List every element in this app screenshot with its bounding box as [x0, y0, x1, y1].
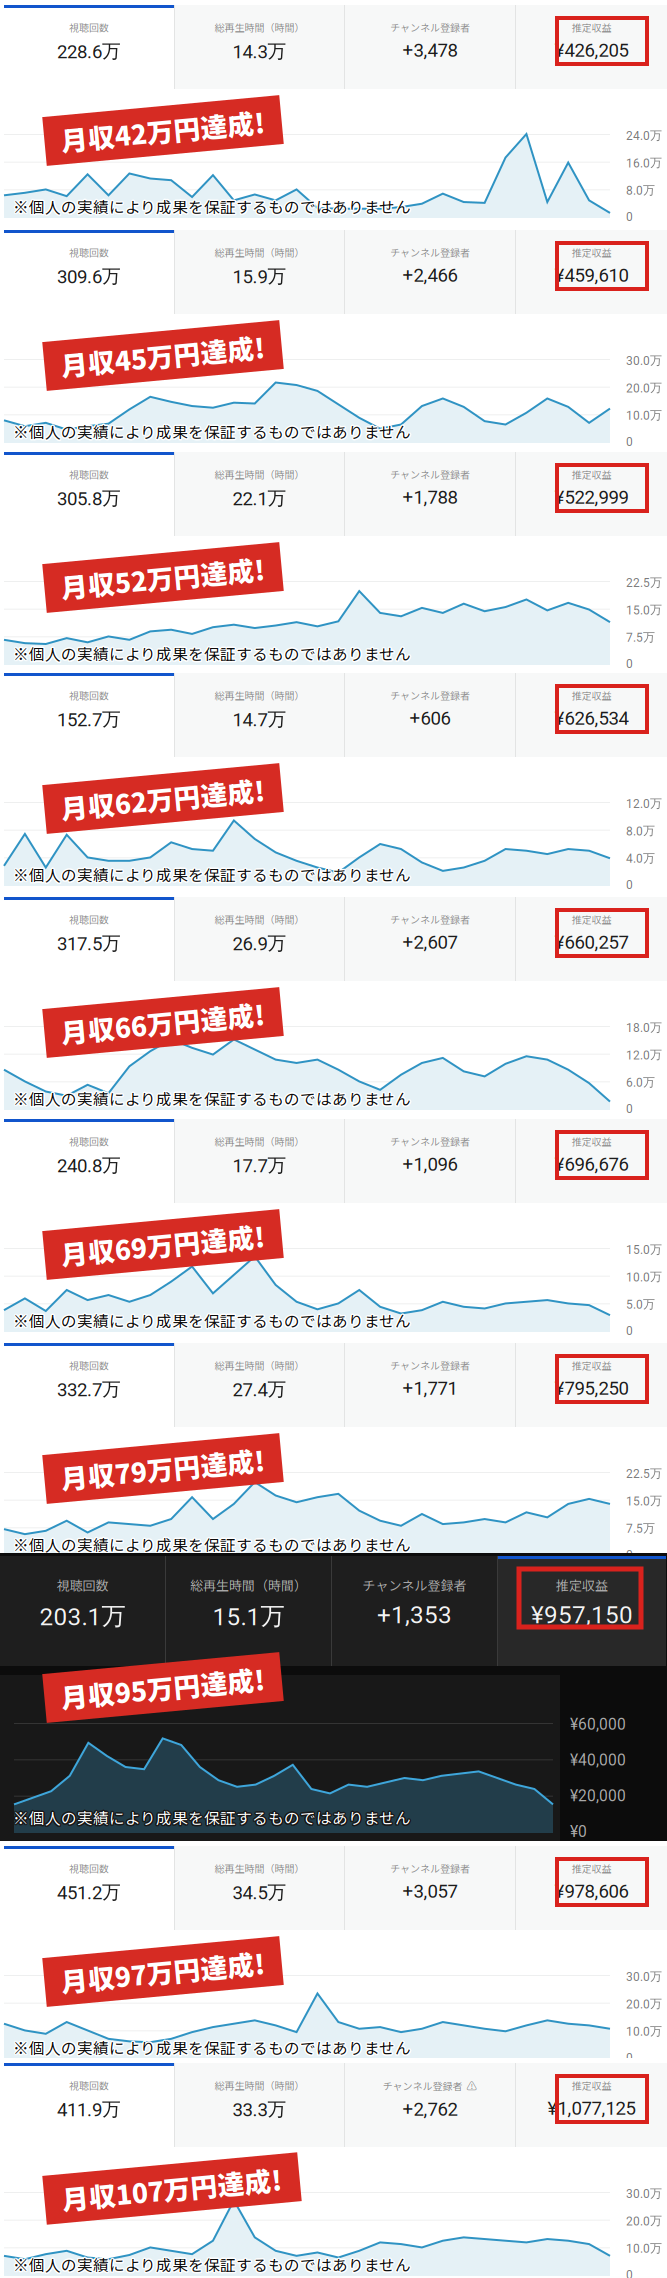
- staticText: ※個人の実績により成果を保証するものではありません: [14, 1309, 412, 1332]
- staticText: チャンネル登録者: [390, 912, 470, 926]
- button[interactable]: 総再生時間（時間）: [175, 5, 344, 89]
- staticText: ※個人の実績により成果を保証するものではありません: [14, 2252, 412, 2274]
- staticText: ※個人の実績により成果を保証するものではありません: [14, 196, 412, 219]
- staticText: 推定収益: [571, 20, 611, 34]
- button[interactable]: 推定収益: [516, 897, 667, 981]
- button[interactable]: 視聴回数: [4, 230, 174, 314]
- staticText: 視聴回数: [69, 2078, 109, 2092]
- staticText: 20.0万: [626, 1996, 662, 2011]
- button[interactable]: チャンネル登録者: [345, 897, 515, 981]
- staticText: 22.1万: [232, 486, 286, 510]
- staticText: ※個人の実績により成果を保証するものではありません: [14, 1806, 412, 1829]
- staticText: 推定収益: [571, 245, 611, 259]
- staticText: 月収95万円達成!: [60, 1668, 265, 1707]
- staticText: ※個人の実績により成果を保証するものではありません: [14, 1087, 412, 1110]
- staticText: 推定収益: [571, 688, 611, 702]
- staticText: 推定収益: [571, 467, 611, 481]
- button[interactable]: 総再生時間（時間）: [166, 1556, 331, 1666]
- button[interactable]: チャンネル登録者: [345, 673, 515, 757]
- staticText: 12.0万: [626, 1047, 662, 1062]
- staticText: 33.3万: [232, 2097, 286, 2121]
- staticText: 推定収益: [556, 1575, 608, 1594]
- staticText: +2,762: [402, 2098, 457, 2120]
- staticText: +1,353: [377, 1601, 452, 1629]
- button[interactable]: 推定収益: [516, 230, 667, 314]
- staticText: 0: [626, 2268, 633, 2278]
- button[interactable]: 視聴回数: [4, 2063, 174, 2147]
- staticText: 240.8万: [57, 1153, 121, 1177]
- staticText: +2,607: [402, 931, 457, 953]
- staticText: ※個人の実績により成果を保証するものではありません: [13, 195, 411, 218]
- button[interactable]: 視聴回数: [4, 673, 174, 757]
- staticText: ※個人の実績により成果を保証するものではありません: [12, 1308, 410, 1330]
- staticText: ※個人の実績により成果を保証するものではありません: [12, 1807, 410, 1830]
- button[interactable]: 推定収益: [516, 5, 667, 89]
- button[interactable]: チャンネル登録者: [345, 5, 515, 89]
- button[interactable]: チャンネル登録者: [345, 2063, 515, 2147]
- staticText: 14.7万: [232, 707, 286, 731]
- staticText: 15.0万: [626, 602, 662, 617]
- staticText: 総再生時間（時間）: [214, 20, 304, 34]
- staticText: 総再生時間（時間）: [214, 245, 304, 259]
- staticText: ※個人の実績により成果を保証するものではありません: [14, 2036, 412, 2059]
- staticText: ※個人の実績により成果を保証するものではありません: [13, 1534, 411, 1557]
- staticText: ※個人の実績により成果を保証するものではありません: [14, 1086, 412, 1108]
- button[interactable]: 推定収益: [516, 1119, 667, 1203]
- staticText: 10.0万: [626, 408, 662, 423]
- button[interactable]: 視聴回数: [4, 897, 174, 981]
- staticText: 30.0万: [626, 1969, 662, 1984]
- staticText: ※個人の実績により成果を保証するものではありません: [13, 863, 411, 886]
- staticText: ※個人の実績により成果を保証するものではありません: [13, 418, 411, 441]
- button[interactable]: チャンネル登録者: [345, 1846, 515, 1930]
- staticText: 推定収益: [571, 1134, 611, 1148]
- button[interactable]: 推定収益: [498, 1556, 666, 1666]
- staticText: ※個人の実績により成果を保証するものではありません: [13, 1307, 411, 1330]
- staticText: 推定収益: [571, 1861, 611, 1875]
- button[interactable]: 推定収益: [516, 452, 667, 536]
- button[interactable]: 総再生時間（時間）: [175, 673, 344, 757]
- button[interactable]: 総再生時間（時間）: [175, 1846, 344, 1930]
- button[interactable]: 推定収益: [516, 673, 667, 757]
- staticText: 0: [626, 1548, 633, 1562]
- button[interactable]: 総再生時間（時間）: [175, 452, 344, 536]
- button[interactable]: 総再生時間（時間）: [175, 2063, 344, 2147]
- staticText: 8.0万: [626, 823, 655, 838]
- button[interactable]: 総再生時間（時間）: [175, 1119, 344, 1203]
- button[interactable]: チャンネル登録者: [345, 1343, 515, 1427]
- button[interactable]: 視聴回数: [4, 1343, 174, 1427]
- staticText: ※個人の実績により成果を保証するものではありません: [14, 863, 412, 886]
- staticText: チャンネル登録者: [390, 245, 470, 259]
- staticText: チャンネル登録者: [390, 1861, 470, 1875]
- button[interactable]: 視聴回数: [4, 5, 174, 89]
- button[interactable]: 推定収益: [516, 2063, 667, 2147]
- staticText: 451.2万: [57, 1880, 121, 1904]
- staticText: ※個人の実績により成果を保証するものではありません: [14, 1533, 412, 1556]
- staticText: 総再生時間（時間）: [214, 2078, 304, 2092]
- button[interactable]: チャンネル登録者: [332, 1556, 497, 1666]
- button[interactable]: 総再生時間（時間）: [175, 1343, 344, 1427]
- staticText: チャンネル登録者: [390, 467, 470, 481]
- button[interactable]: 視聴回数: [4, 452, 174, 536]
- staticText: 15.9万: [232, 264, 286, 288]
- staticText: 視聴回数: [69, 245, 109, 259]
- staticText: 月収107万円達成!: [61, 2169, 282, 2208]
- staticText: ※個人の実績により成果を保証するものではありません: [12, 1088, 410, 1111]
- staticText: 16.0万: [626, 155, 662, 170]
- staticText: +1,096: [402, 1153, 457, 1175]
- button[interactable]: 推定収益: [516, 1846, 667, 1930]
- button[interactable]: 総再生時間（時間）: [175, 230, 344, 314]
- staticText: ※個人の実績により成果を保証するものではありません: [11, 642, 409, 665]
- staticText: ¥1,077,125: [547, 2097, 635, 2119]
- button[interactable]: チャンネル登録者: [345, 1119, 515, 1203]
- staticText: 月収97万円達成!: [60, 1952, 265, 1991]
- button[interactable]: 推定収益: [516, 1343, 667, 1427]
- button[interactable]: チャンネル登録者: [345, 230, 515, 314]
- button[interactable]: 視聴回数: [0, 1556, 165, 1666]
- staticText: ※個人の実績により成果を保証するものではありません: [11, 195, 409, 218]
- staticText: 月収42万円達成!: [60, 111, 265, 150]
- button[interactable]: 視聴回数: [4, 1846, 174, 1930]
- button[interactable]: 総再生時間（時間）: [175, 897, 344, 981]
- button[interactable]: 視聴回数: [4, 1119, 174, 1203]
- staticText: ※個人の実績により成果を保証するものではありません: [13, 1531, 411, 1554]
- button[interactable]: チャンネル登録者: [345, 452, 515, 536]
